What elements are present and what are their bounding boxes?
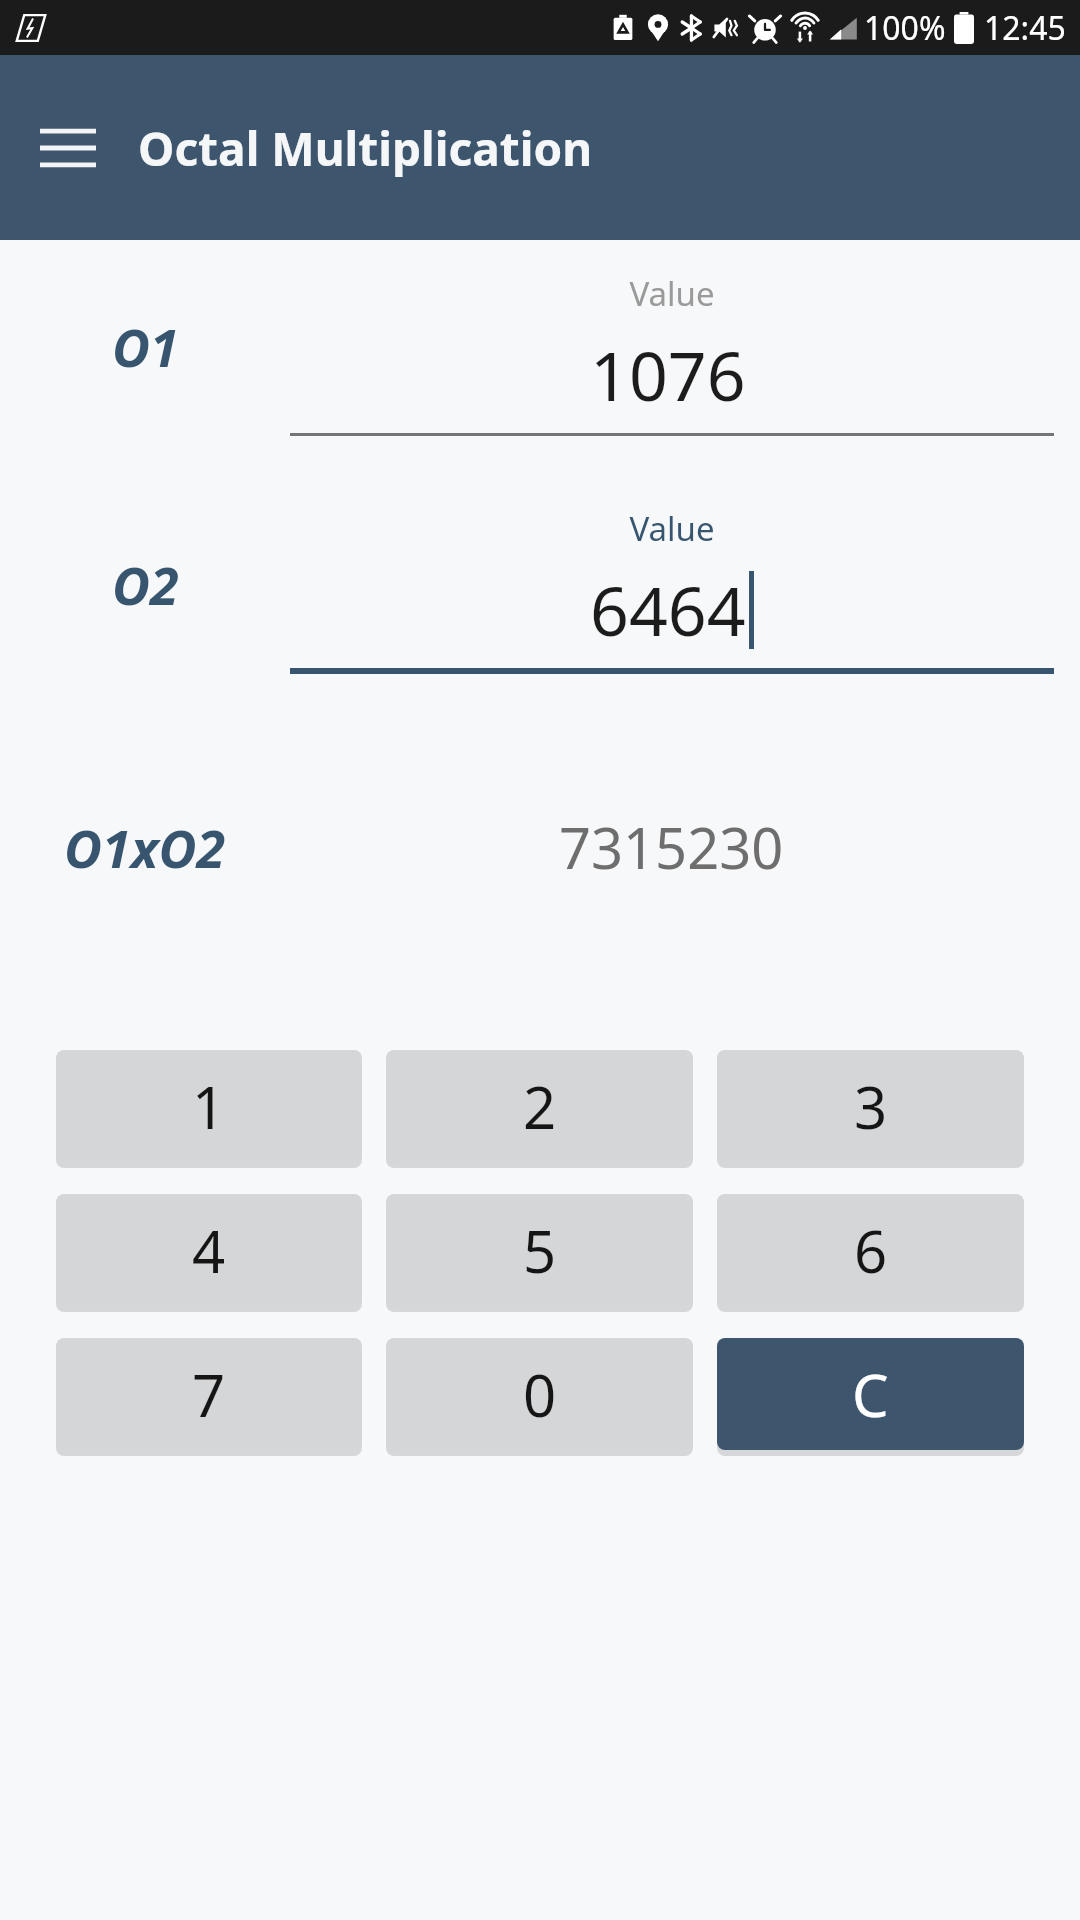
staticText: C [852, 1355, 889, 1434]
button[interactable]: 4 [56, 1194, 362, 1306]
button[interactable]: 1 [56, 1050, 362, 1162]
staticText: 6464 [590, 563, 746, 656]
staticText: O2 [112, 549, 179, 620]
staticText: 1 [192, 1067, 226, 1146]
staticText: Value [290, 271, 1054, 316]
staticText: 1076 [590, 328, 746, 421]
staticText: 5 [523, 1211, 557, 1290]
button[interactable]: 7 [56, 1338, 362, 1450]
button[interactable]: 5 [386, 1194, 693, 1306]
staticText: 7 [192, 1355, 226, 1434]
button[interactable]: Value [290, 256, 1054, 436]
staticText: 0 [523, 1355, 557, 1434]
button[interactable]: 3 [717, 1050, 1024, 1162]
button[interactable]: Value [290, 494, 1054, 674]
button[interactable]: C [717, 1338, 1024, 1450]
button[interactable]: 0 [386, 1338, 693, 1450]
staticText: Value [290, 506, 1054, 551]
staticText: 12:45 [984, 6, 1066, 50]
staticText: 4 [192, 1211, 226, 1290]
staticText: Octal Multiplication [138, 117, 593, 180]
button[interactable]: 6 [717, 1194, 1024, 1306]
staticText: 100% [864, 6, 946, 50]
staticText: 2 [523, 1067, 557, 1146]
staticText: O1xO2 [64, 812, 226, 883]
staticText: 6 [854, 1211, 888, 1290]
staticText: O1 [112, 311, 179, 382]
button[interactable]: Open navigation menu [28, 108, 108, 188]
staticText: 7315230 [559, 809, 784, 885]
staticText: 3 [854, 1067, 888, 1146]
button[interactable]: 2 [386, 1050, 693, 1162]
